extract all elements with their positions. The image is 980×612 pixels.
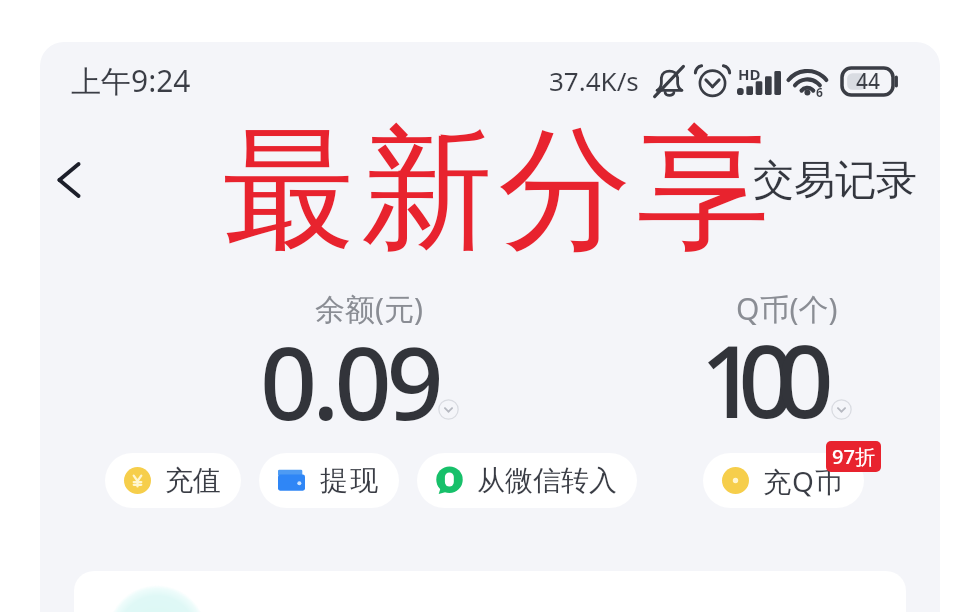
button[interactable]: 提现 — [259, 453, 399, 508]
staticText: 97折 — [832, 443, 875, 470]
staticText: 充Q币 — [763, 462, 844, 500]
button[interactable]: 充值 — [105, 453, 241, 508]
button[interactable]: 交易记录 — [747, 149, 923, 213]
staticText: 交易记录 — [753, 155, 917, 207]
staticText: 提现 — [319, 463, 379, 498]
button[interactable]: 充Q币 — [703, 453, 864, 508]
staticText: 余额(元) — [315, 288, 423, 329]
staticText: 44 — [856, 67, 881, 94]
staticText: 从微信转入 — [477, 463, 617, 498]
staticText: 100 — [700, 311, 815, 447]
staticText: 6 — [816, 84, 823, 100]
button[interactable]: Back — [34, 145, 104, 215]
staticText: 0.09 — [260, 313, 439, 449]
staticText: 上午9:24 — [71, 60, 191, 101]
staticText: 最新分享 — [220, 107, 772, 275]
staticText: 37.4K/s — [549, 63, 639, 98]
staticText: 充值 — [165, 463, 221, 498]
staticText: HD — [738, 64, 761, 84]
staticText: Q币(个) — [736, 288, 838, 329]
button[interactable]: 从微信转入 — [417, 453, 637, 508]
